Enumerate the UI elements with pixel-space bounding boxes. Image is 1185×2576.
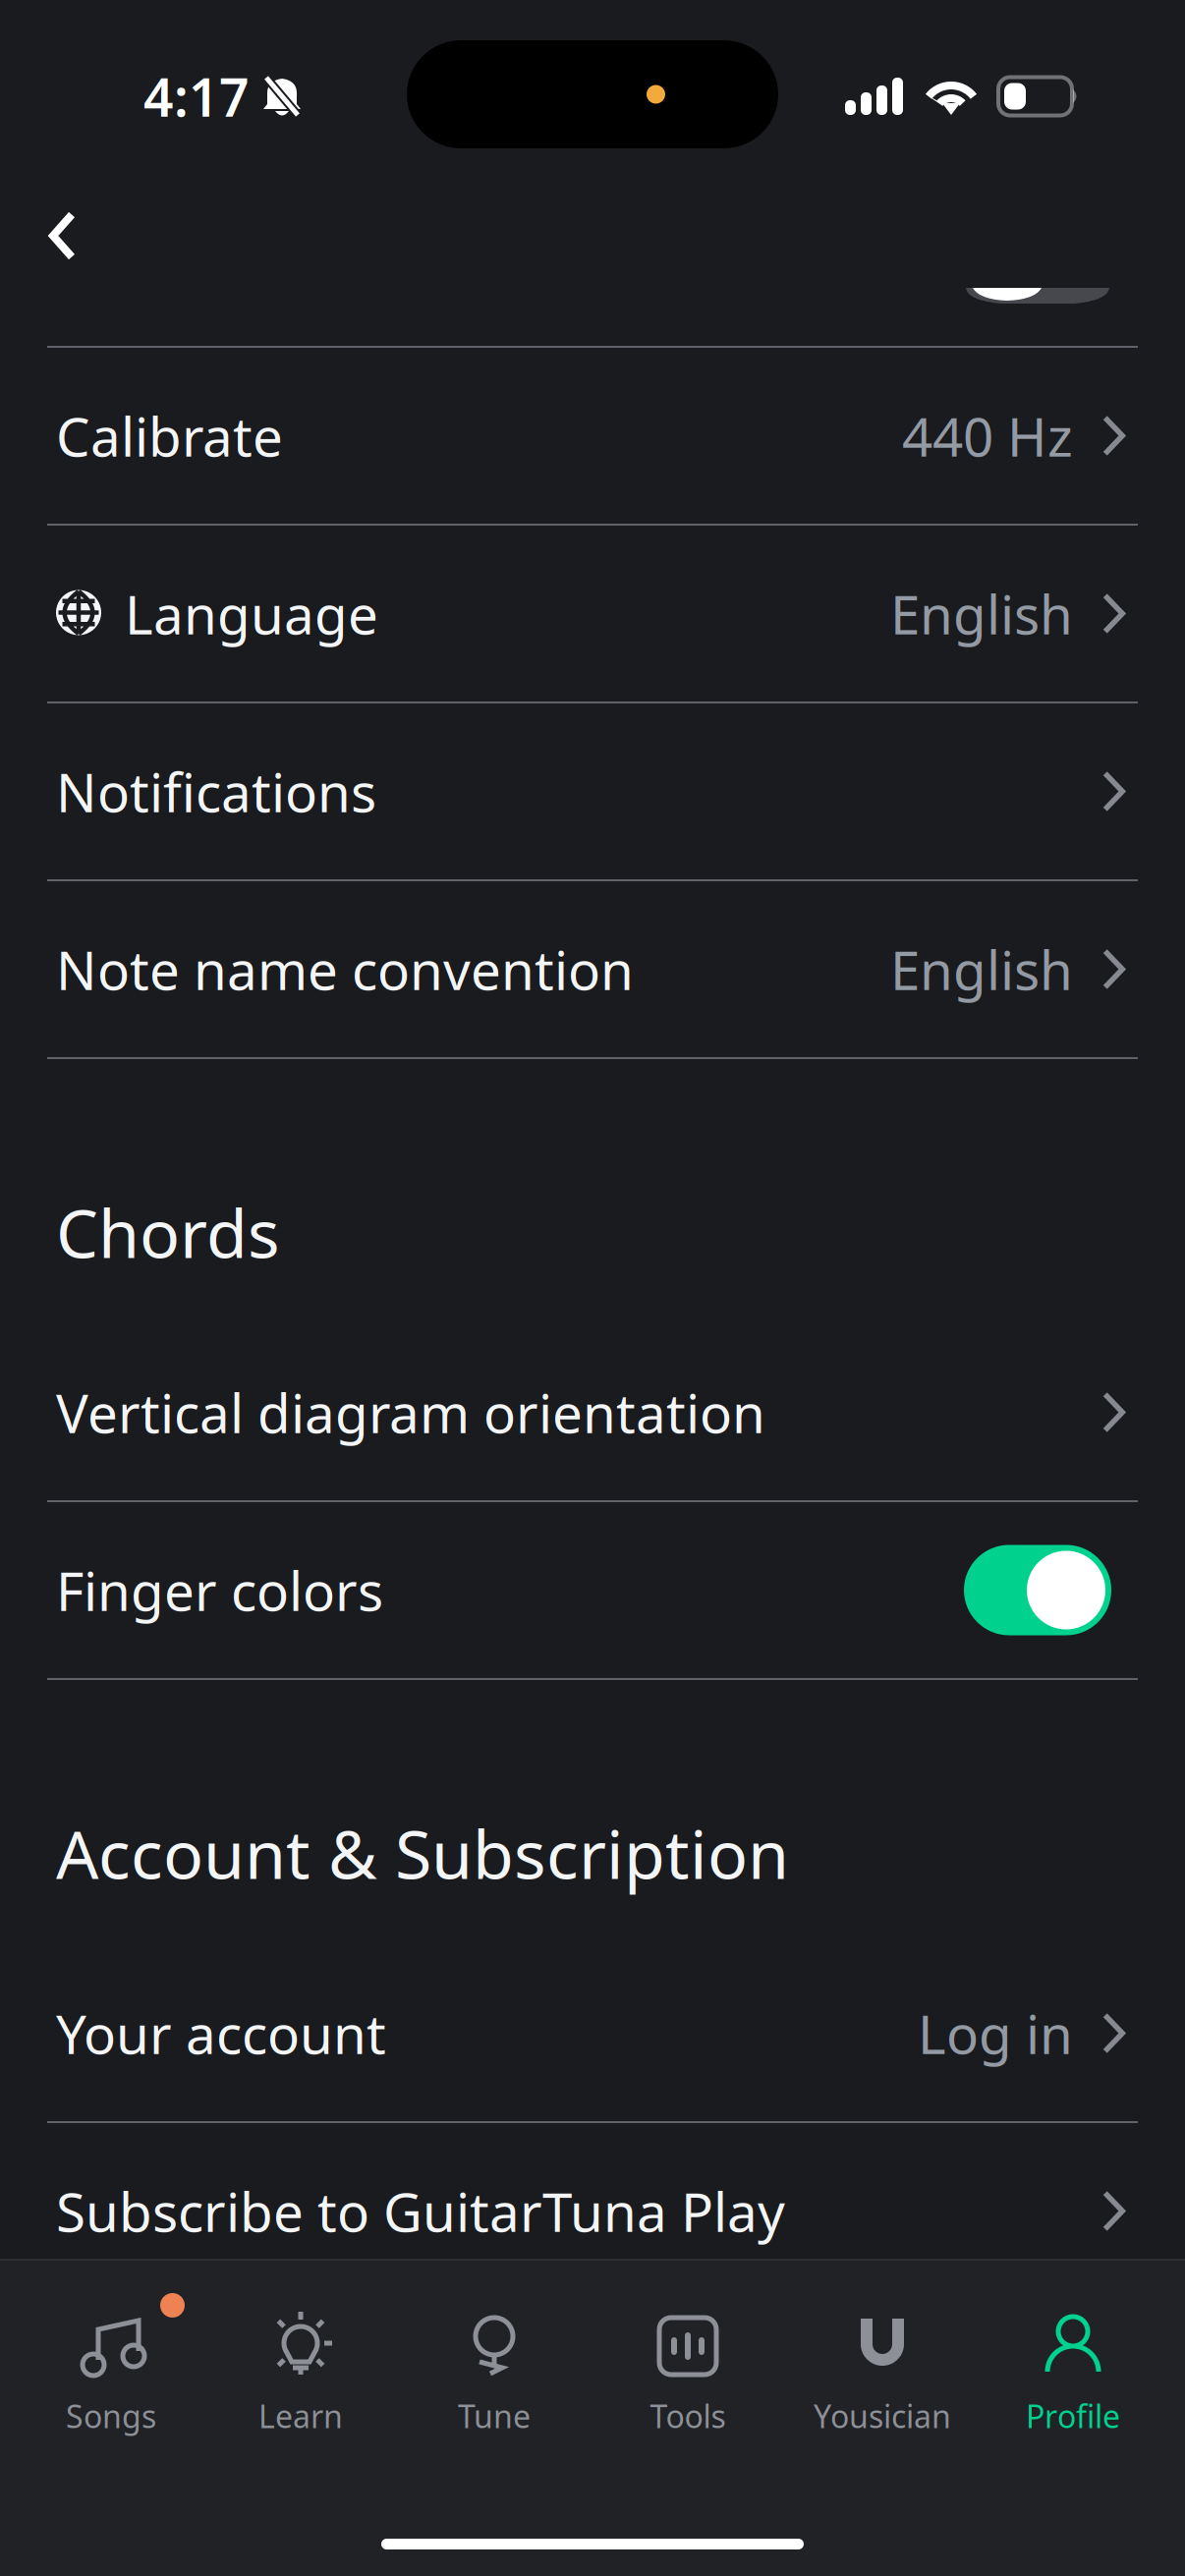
button[interactable]: Yousician xyxy=(785,2261,978,2447)
staticText: Notifications xyxy=(56,756,376,827)
button[interactable]: Note name convention xyxy=(0,881,1185,1057)
staticText: Log in xyxy=(918,1998,1073,2069)
button[interactable]: Songs xyxy=(0,2261,206,2447)
staticText: Yousician xyxy=(814,2395,951,2437)
button[interactable]: Notifications xyxy=(0,703,1185,879)
button[interactable]: Learn xyxy=(206,2261,397,2447)
staticText: Note name convention xyxy=(56,934,634,1005)
staticText: English xyxy=(890,934,1073,1005)
staticText: Tune xyxy=(458,2395,531,2437)
staticText: Subscribe to GuitarTuna Play xyxy=(56,2175,785,2247)
staticText: Profile xyxy=(1026,2395,1120,2437)
button[interactable]: Back xyxy=(10,167,114,305)
staticText: Calibrate xyxy=(56,400,283,471)
button[interactable]: Calibrate xyxy=(0,348,1185,524)
button[interactable]: Subscribe to GuitarTuna Play xyxy=(0,2123,1185,2299)
staticText: Account & Subscription xyxy=(56,1809,789,1897)
button[interactable]: Finger colors xyxy=(0,1502,1185,1678)
staticText: Chords xyxy=(56,1188,280,1276)
staticText: Vertical diagram orientation xyxy=(56,1377,765,1448)
staticText: 4:17 xyxy=(143,62,250,131)
staticText: Finger colors xyxy=(56,1554,383,1626)
button[interactable]: Your account xyxy=(0,1945,1185,2121)
button[interactable]: Vertical diagram orientation xyxy=(0,1324,1185,1500)
button[interactable]: Profile xyxy=(978,2261,1185,2447)
staticText: 440 Hz xyxy=(902,400,1073,471)
button[interactable]: Tools xyxy=(591,2261,785,2447)
staticText: Learn xyxy=(258,2395,343,2437)
staticText: Songs xyxy=(66,2395,156,2437)
staticText: Language xyxy=(125,578,378,649)
staticText: Tools xyxy=(650,2395,726,2437)
button[interactable]: Language xyxy=(0,526,1185,701)
staticText: English xyxy=(890,578,1073,649)
staticText: Your account xyxy=(56,1998,386,2069)
button[interactable]: Tune xyxy=(397,2261,591,2447)
